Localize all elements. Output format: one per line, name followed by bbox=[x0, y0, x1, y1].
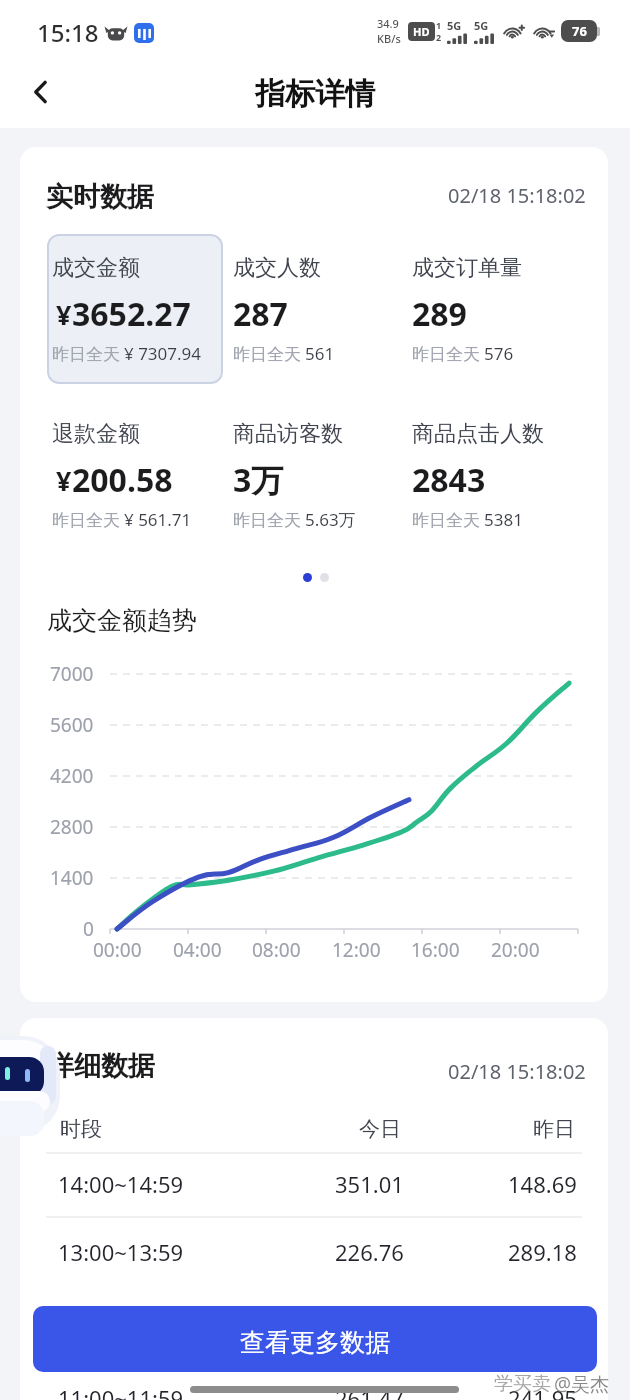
staticText: 成交人数 bbox=[233, 254, 321, 282]
staticText: 12:00 bbox=[332, 937, 381, 963]
staticText: 实时数据 bbox=[46, 180, 154, 214]
staticText: 成交订单量 bbox=[412, 254, 522, 282]
staticText: 351.01 bbox=[335, 1169, 404, 1199]
staticText: 20:00 bbox=[491, 937, 540, 963]
button[interactable]: 14:00~14:59 bbox=[37, 1159, 597, 1208]
staticText: 2843 bbox=[412, 458, 486, 502]
staticText: 成交金额趋势 bbox=[47, 605, 197, 636]
staticText: 2800 bbox=[50, 814, 94, 839]
staticText: 指标详情 bbox=[255, 75, 375, 113]
staticText: 昨日全天 bbox=[52, 510, 120, 531]
button[interactable]: 11:00~11:59 bbox=[37, 1373, 597, 1400]
staticText: 详细数据 bbox=[47, 1049, 155, 1083]
button[interactable]: 查看更多数据 bbox=[33, 1306, 597, 1372]
staticText: 昨日全天 bbox=[412, 344, 480, 365]
staticText: 200.58 bbox=[72, 458, 173, 502]
staticText: 今日 bbox=[359, 1116, 401, 1142]
staticText: ¥ 561.71 bbox=[124, 508, 192, 531]
staticText: 34.9 bbox=[377, 16, 399, 31]
staticText: 241.95 bbox=[508, 1383, 577, 1400]
staticText: ¥ 7307.94 bbox=[124, 342, 202, 365]
staticText: 11:00~11:59 bbox=[58, 1383, 184, 1400]
staticText: 287 bbox=[233, 292, 288, 336]
staticText: 时段 bbox=[60, 1116, 102, 1142]
staticText: ¥ bbox=[56, 296, 72, 333]
staticText: 02/18 15:18:02 bbox=[448, 182, 586, 209]
staticText: 3652.27 bbox=[72, 292, 191, 336]
staticText: 14:00~14:59 bbox=[58, 1169, 184, 1199]
button[interactable]: 13:00~13:59 bbox=[37, 1227, 597, 1276]
staticText: 退款金额 bbox=[52, 420, 140, 448]
staticText: 昨日全天 bbox=[412, 510, 480, 531]
staticText: 76 bbox=[572, 22, 587, 40]
staticText: 576 bbox=[484, 342, 514, 365]
staticText: 1400 bbox=[50, 865, 94, 890]
staticText: 15:18 bbox=[37, 16, 99, 49]
staticText: @吴杰 bbox=[554, 1371, 610, 1397]
staticText: 289 bbox=[412, 292, 467, 336]
staticText: 3万 bbox=[233, 458, 284, 502]
button[interactable]: Back bbox=[15, 66, 67, 118]
staticText: 0 bbox=[83, 916, 94, 941]
staticText: 5381 bbox=[484, 508, 523, 531]
staticText: 02/18 15:18:02 bbox=[448, 1058, 586, 1085]
staticText: 08:00 bbox=[252, 937, 301, 963]
staticText: 成交金额 bbox=[52, 254, 140, 282]
staticText: 7000 bbox=[50, 661, 94, 686]
staticText: 00:00 bbox=[93, 937, 142, 963]
staticText: 561 bbox=[305, 342, 335, 365]
staticText: 2 bbox=[436, 31, 442, 43]
staticText: HD bbox=[413, 24, 430, 39]
button[interactable] bbox=[47, 234, 223, 384]
staticText: KB/s bbox=[377, 31, 401, 46]
staticText: 289.18 bbox=[508, 1237, 577, 1267]
staticText: 昨日 bbox=[533, 1116, 575, 1142]
staticText: 5.63万 bbox=[305, 508, 356, 531]
staticText: 学买卖 bbox=[494, 1372, 551, 1396]
staticText: ¥ bbox=[56, 462, 72, 499]
staticText: 1 bbox=[436, 19, 442, 31]
staticText: 昨日全天 bbox=[233, 510, 301, 531]
staticText: 昨日全天 bbox=[233, 344, 301, 365]
staticText: 13:00~13:59 bbox=[58, 1237, 184, 1267]
staticText: 04:00 bbox=[173, 937, 222, 963]
staticText: 16:00 bbox=[411, 937, 460, 963]
staticText: 261.47 bbox=[335, 1383, 404, 1400]
staticText: 查看更多数据 bbox=[240, 1327, 390, 1358]
staticText: 148.69 bbox=[508, 1169, 577, 1199]
staticText: 5G bbox=[474, 18, 489, 33]
staticText: 5G bbox=[447, 18, 462, 33]
staticText: 4200 bbox=[50, 763, 94, 788]
staticText: 商品点击人数 bbox=[412, 420, 544, 448]
staticText: 5600 bbox=[50, 712, 94, 737]
staticText: 226.76 bbox=[335, 1237, 404, 1267]
staticText: 昨日全天 bbox=[52, 344, 120, 365]
staticText: 商品访客数 bbox=[233, 420, 343, 448]
